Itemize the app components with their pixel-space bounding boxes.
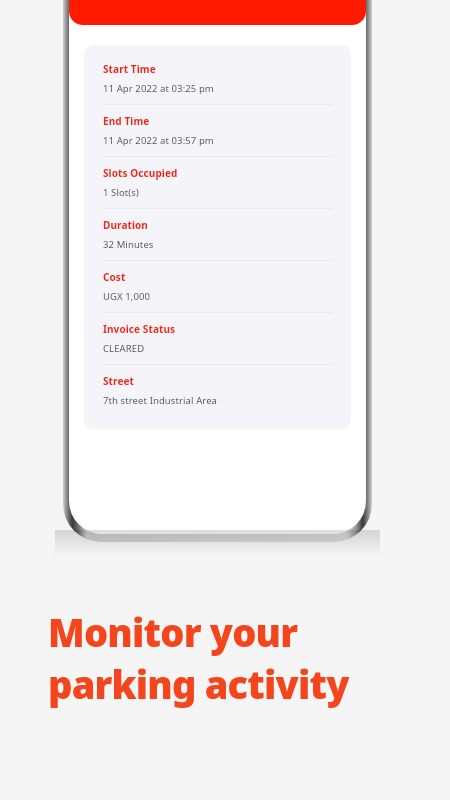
button[interactable]: Start Time	[84, 62, 351, 95]
staticText: 32 Minutes	[103, 238, 154, 251]
staticText: Monitor your	[48, 606, 298, 658]
button[interactable]: Slots Occupied	[84, 166, 351, 199]
button[interactable]: End Time	[84, 114, 351, 147]
button[interactable]: Duration	[84, 218, 351, 251]
staticText: 11 Apr 2022 at 03:57 pm	[103, 134, 214, 147]
button[interactable]: Cost	[84, 270, 351, 303]
staticText: Slots Occupied	[103, 166, 178, 180]
staticText: Duration	[103, 218, 148, 232]
staticText: End Time	[103, 114, 150, 128]
button[interactable]: Street	[84, 374, 351, 407]
staticText: parking activity	[48, 658, 349, 710]
staticText: CLEARED	[103, 342, 145, 355]
staticText: Invoice Status	[103, 322, 176, 336]
staticText: 7th street Industrial Area	[103, 394, 218, 407]
staticText: 1 Slot(s)	[103, 186, 139, 199]
button[interactable]: Invoice Status	[84, 322, 351, 355]
staticText: Street	[103, 374, 134, 388]
button[interactable]: Start Time	[84, 45, 351, 429]
staticText: Start Time	[103, 62, 156, 76]
staticText: UGX 1,000	[103, 290, 151, 303]
staticText: 11 Apr 2022 at 03:25 pm	[103, 82, 214, 95]
staticText: Cost	[103, 270, 126, 284]
